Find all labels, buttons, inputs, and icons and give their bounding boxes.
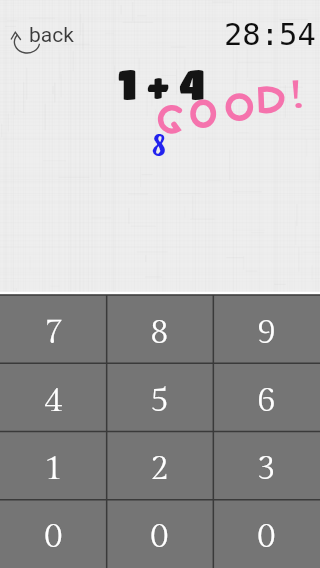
staticText: 4	[44, 381, 63, 421]
button[interactable]: 0	[213, 500, 320, 568]
staticText: 28:54	[224, 17, 316, 53]
button[interactable]: 7	[0, 295, 106, 364]
button[interactable]: 5	[106, 364, 213, 432]
button[interactable]: 8	[106, 295, 213, 364]
button[interactable]: 3	[213, 432, 320, 500]
staticText: 1	[44, 449, 63, 489]
staticText: 0	[257, 517, 276, 557]
staticText: 2	[150, 449, 169, 489]
staticText: 7	[44, 313, 63, 353]
button[interactable]: 4	[0, 364, 106, 432]
staticText: 0	[150, 517, 169, 557]
staticText: 3	[257, 449, 276, 489]
staticText: 5	[150, 381, 169, 421]
button[interactable]: back	[2, 14, 82, 58]
button[interactable]: 9	[213, 295, 320, 364]
staticText: 9	[257, 313, 276, 353]
staticText: 1 + 4	[118, 59, 206, 107]
staticText: 8	[150, 313, 169, 353]
staticText: back	[29, 23, 74, 48]
button[interactable]: 1	[0, 432, 106, 500]
button[interactable]: 2	[106, 432, 213, 500]
staticText: 8	[152, 126, 166, 164]
staticText: 6	[257, 381, 276, 421]
button[interactable]: 0	[106, 500, 213, 568]
button[interactable]: 0	[0, 500, 106, 568]
staticText: 0	[44, 517, 63, 557]
button[interactable]: 6	[213, 364, 320, 432]
